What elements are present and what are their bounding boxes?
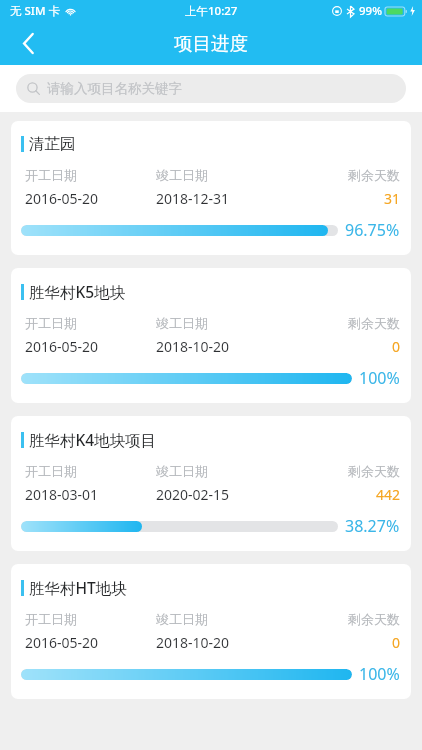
staticText: 胜华村K4地块项目 [29,429,157,450]
staticText: 442 [288,485,400,504]
button[interactable]: 胜华村K4地块项目 [11,416,411,551]
button[interactable]: Back [6,22,50,65]
staticText: 剩余天数 [288,315,400,331]
staticText: 开工日期 [25,463,156,479]
button[interactable]: 胜华村K5地块 [11,268,411,403]
staticText: 96.75% [345,219,400,241]
staticText: 100% [359,367,400,389]
staticText: 0 [288,633,400,652]
staticText: 胜华村K5地块 [29,281,126,302]
button[interactable]: 清芷园 [11,121,411,255]
staticText: 上午10:27 [185,3,238,19]
staticText: 剩余天数 [288,463,400,479]
staticText: 2018-10-20 [156,337,288,356]
staticText: 38.27% [345,515,400,537]
staticText: 无 SIM 卡 [10,3,60,19]
staticText: 胜华村HT地块 [29,577,127,598]
staticText: 2018-12-31 [156,189,288,208]
staticText: 2020-02-15 [156,485,288,504]
staticText: 竣工日期 [156,315,288,331]
staticText: 0 [288,337,400,356]
staticText: 开工日期 [25,167,156,183]
staticText: 2016-05-20 [25,337,156,356]
staticText: 竣工日期 [156,167,288,183]
staticText: 请输入项目名称关键字 [47,80,182,97]
staticText: 2018-10-20 [156,633,288,652]
staticText: 项目进度 [174,32,248,55]
staticText: 100% [359,663,400,685]
staticText: 开工日期 [25,611,156,627]
button[interactable]: 胜华村HT地块 [11,564,411,699]
staticText: 2018-03-01 [25,485,156,504]
staticText: 99% [359,3,382,19]
staticText: 竣工日期 [156,611,288,627]
staticText: 清芷园 [29,134,76,154]
staticText: 剩余天数 [288,611,400,627]
button[interactable]: 请输入项目名称关键字 [16,74,406,103]
staticText: 2016-05-20 [25,189,156,208]
staticText: 31 [288,189,400,208]
staticText: 2016-05-20 [25,633,156,652]
staticText: 竣工日期 [156,463,288,479]
staticText: 开工日期 [25,315,156,331]
staticText: 剩余天数 [288,167,400,183]
